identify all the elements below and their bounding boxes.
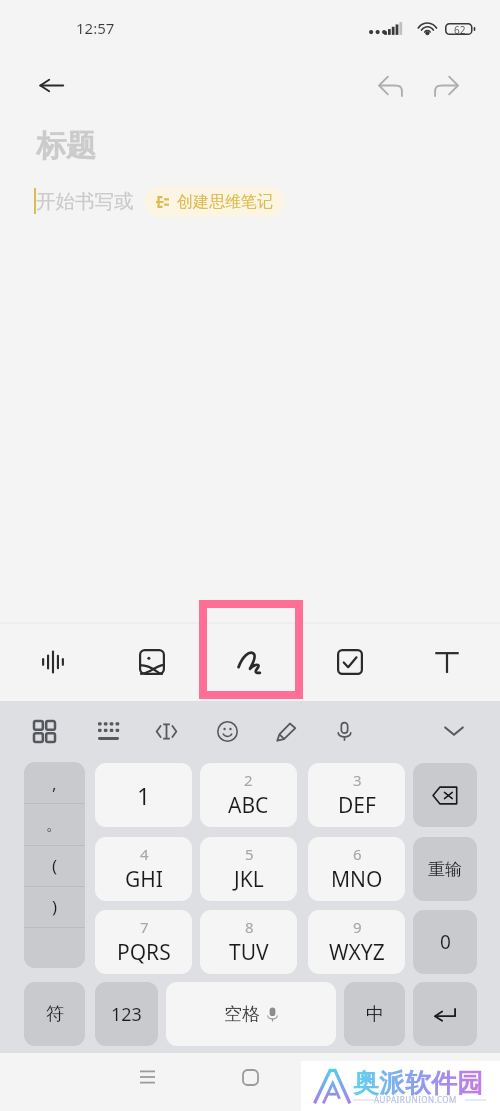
button[interactable]: Back [29,63,73,107]
staticText: 7 [140,917,149,937]
staticText: GHI [125,865,163,894]
staticText: 4 [140,844,149,864]
staticText: 符 [46,1003,64,1026]
staticText: 奥派软件园 [353,1067,483,1100]
button[interactable]: ( [24,845,85,886]
button[interactable]: 。 [24,804,85,845]
button[interactable]: 8 [200,910,297,974]
button[interactable]: 符 [24,982,85,1046]
staticText: ( [52,854,58,877]
button[interactable]: 空格 [166,982,336,1046]
button[interactable]: Handwriting [223,634,279,690]
button[interactable]: ) [24,886,85,927]
button[interactable]: 9 [308,910,405,974]
staticText: 8 [245,917,254,937]
staticText: ABC [228,791,269,820]
button[interactable]: 4 [95,837,192,901]
button[interactable]: Recents [123,1053,171,1101]
staticText: 6 [353,844,362,864]
button[interactable]: 0 [413,910,477,974]
staticText: 。 [46,814,63,835]
button[interactable]: 2 [200,763,297,827]
button[interactable]: Voice [25,634,81,690]
button[interactable]: Text format [419,634,475,690]
staticText: DEF [338,791,376,820]
staticText: 5 [245,844,254,864]
button[interactable]: 123 [95,982,158,1046]
staticText: ) [52,895,58,918]
staticText: 标题 [36,127,96,165]
button[interactable]: 3 [308,763,405,827]
staticText: 空格 [224,1003,260,1026]
button[interactable]: Home [226,1053,274,1101]
staticText: AUPAIRUNION.COM [374,1094,457,1105]
staticText: 1 [137,780,151,811]
button[interactable]: 5 [200,837,297,901]
staticText: 创建思维笔记 [177,192,273,212]
button[interactable]: Image [124,634,180,690]
button[interactable]: 创建思维笔记 [144,187,285,217]
staticText: 重输 [428,859,462,880]
button[interactable]: 6 [308,837,405,901]
staticText: 123 [111,1002,142,1027]
button[interactable]: Hide keyboard [433,710,475,752]
button[interactable]: Checklist [322,634,378,690]
staticText: 中 [366,1003,384,1026]
staticText: TUV [229,938,269,967]
button[interactable]: Redo [423,62,469,108]
button[interactable]: Undo [368,62,414,108]
button[interactable]: Grid [23,710,65,752]
staticText: 12:57 [76,18,115,38]
staticText: , [52,772,57,795]
staticText: 0 [440,929,451,955]
button[interactable]: 重输 [413,837,477,901]
staticText: 9 [353,917,362,937]
button[interactable]: Keyboard layout [87,710,129,752]
staticText: PQRS [117,938,171,967]
button[interactable]: Cursor [145,710,187,752]
staticText: JKL [234,865,264,894]
staticText: 62 [454,23,466,37]
button[interactable]: Enter [413,982,477,1046]
button[interactable]: Voice input [323,710,365,752]
button[interactable] [24,927,85,968]
button[interactable]: Emoji [206,710,248,752]
button[interactable]: 中 [344,982,405,1046]
staticText: 开始书写或 [36,189,134,214]
button[interactable]: 7 [95,910,192,974]
staticText: 2 [244,770,253,790]
staticText: 3 [353,770,362,790]
button[interactable]: Pen [265,710,307,752]
staticText: WXYZ [329,938,385,967]
staticText: MNO [331,865,383,894]
button[interactable]: Backspace [413,763,477,827]
button[interactable]: 1 [95,763,192,827]
button[interactable]: , [24,762,85,804]
